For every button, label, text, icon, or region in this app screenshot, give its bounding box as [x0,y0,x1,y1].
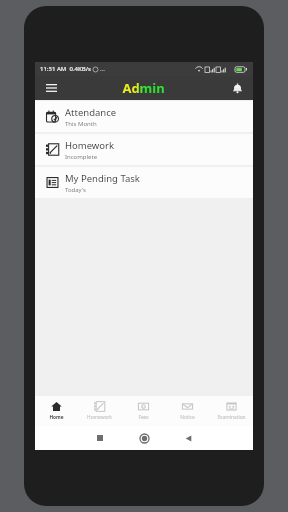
staticText: This Month [65,120,97,128]
staticText: Fees [138,414,149,421]
button[interactable]: Examination [209,396,253,426]
staticText: Homework [87,414,112,421]
staticText: Home [49,414,64,421]
staticText: Today's [65,186,86,194]
staticText: My Pending Task [65,172,140,185]
button[interactable]: Attendance [35,101,253,132]
staticText: Admin [122,79,165,97]
staticText: Homework [65,139,115,152]
button[interactable]: Home [131,426,157,450]
staticText: 11:51 AM 0.4KB/s [40,65,91,73]
button[interactable]: Homework [78,396,121,426]
button[interactable]: Open navigation menu [42,79,60,97]
button[interactable]: Back [175,426,201,450]
button[interactable]: My Pending Task [35,167,253,198]
button[interactable]: Home [35,396,78,426]
staticText: Incomplete [65,153,98,161]
staticText: ... [100,65,105,73]
staticText: Attendance [65,106,117,119]
button[interactable]: Notifications [228,79,246,97]
button[interactable]: Homework [35,134,253,165]
button[interactable]: Notice [165,396,209,426]
staticText: Notice [180,414,195,421]
staticText: Examination [217,414,246,421]
button[interactable]: Recent apps [87,426,113,450]
button[interactable]: Fees [121,396,165,426]
